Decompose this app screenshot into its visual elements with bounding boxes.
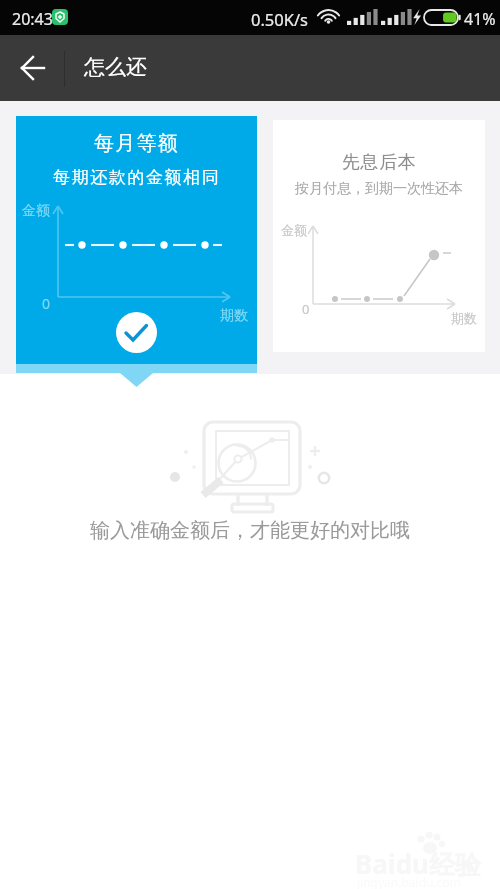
staticText: 每月等额 [94, 131, 179, 156]
staticText: 0.50K/s [251, 8, 308, 30]
staticText: 输入准确金额后，才能更好的对比哦 [90, 518, 410, 543]
staticText: 按月付息，到期一次性还本 [295, 180, 463, 198]
staticText: 先息后本 [342, 151, 417, 174]
staticText: 金额 [22, 202, 50, 220]
staticText: 41% [464, 8, 496, 30]
staticText: 期数 [220, 307, 248, 325]
button[interactable]: 每月等额 [16, 116, 257, 373]
button[interactable]: 先息后本 [273, 120, 485, 352]
staticText: 20:43 [12, 8, 53, 30]
staticText: 金额 [281, 222, 307, 238]
staticText: 0 [302, 300, 310, 318]
staticText: Baidu经验 [355, 846, 481, 882]
staticText: 0 [42, 294, 51, 313]
staticText: 期数 [451, 310, 477, 326]
staticText: 怎么还 [84, 54, 147, 80]
button[interactable]: Back [4, 35, 62, 101]
staticText: 每期还款的金额相同 [53, 167, 221, 188]
